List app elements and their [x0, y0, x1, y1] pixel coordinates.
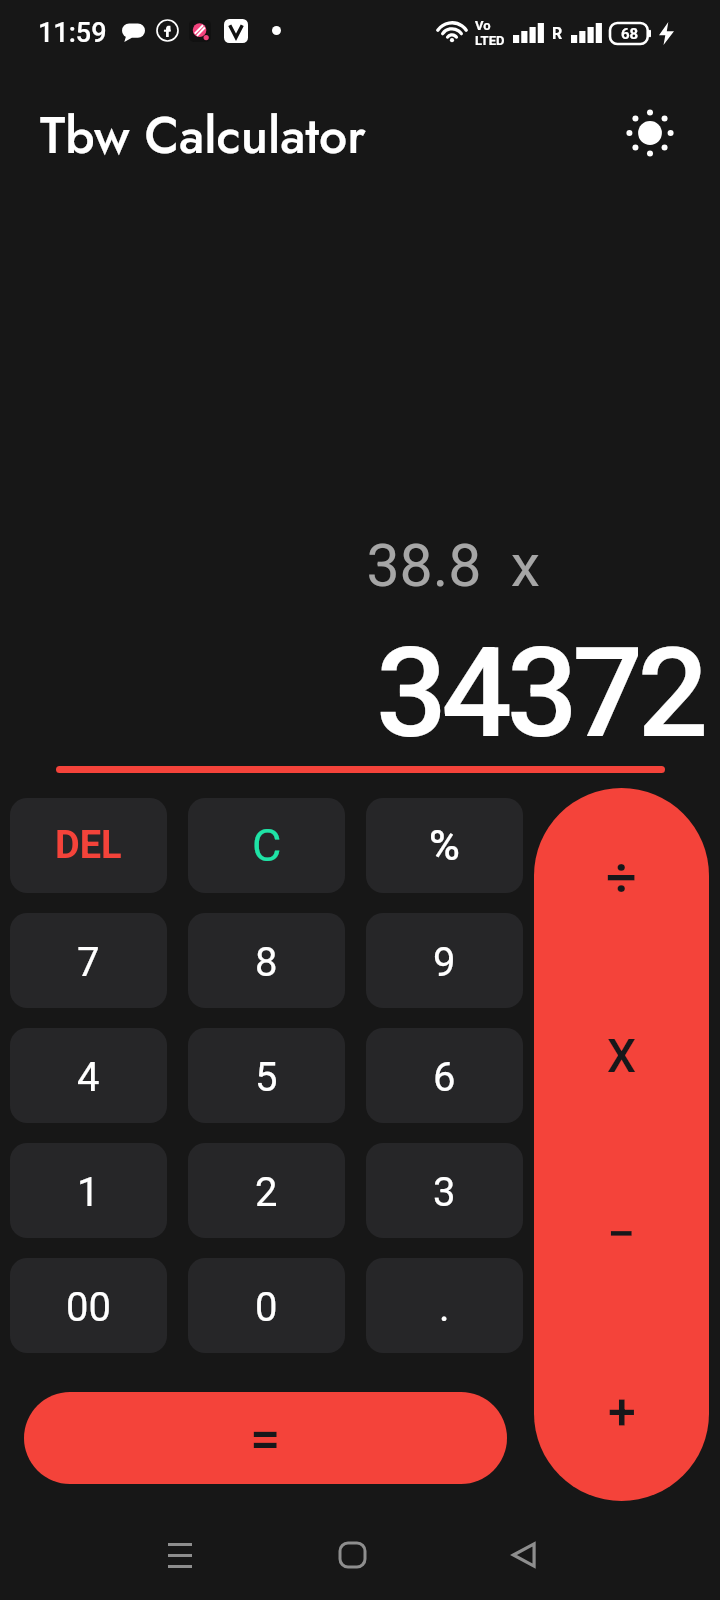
button[interactable]: 2: [188, 1143, 345, 1238]
staticText: 68: [621, 25, 639, 43]
button[interactable]: 8: [188, 913, 345, 1008]
button[interactable]: 1: [10, 1143, 167, 1238]
button[interactable]: 9: [366, 913, 523, 1008]
button[interactable]: +: [534, 1323, 709, 1501]
staticText: ÷: [606, 846, 637, 909]
staticText: +: [608, 1383, 636, 1442]
staticText: R: [552, 24, 563, 43]
staticText: .: [439, 1284, 450, 1331]
button[interactable]: 4: [10, 1028, 167, 1123]
staticText: 2: [255, 1169, 278, 1216]
staticText: 38.8 x: [0, 531, 540, 600]
staticText: Vo: [475, 18, 491, 33]
button[interactable]: =: [24, 1392, 507, 1484]
button[interactable]: Recents: [150, 1525, 210, 1585]
button[interactable]: ÷: [534, 788, 709, 967]
staticText: 9: [433, 939, 456, 986]
staticText: 6: [433, 1054, 456, 1101]
button[interactable]: −: [534, 1145, 709, 1323]
staticText: C: [252, 819, 282, 872]
staticText: 7: [77, 939, 100, 986]
button[interactable]: C: [188, 798, 345, 893]
button[interactable]: 6: [366, 1028, 523, 1123]
staticText: 11:59: [38, 17, 107, 49]
button[interactable]: 5: [188, 1028, 345, 1123]
button[interactable]: Back: [494, 1525, 554, 1585]
staticText: X: [607, 1029, 637, 1083]
button[interactable]: DEL: [10, 798, 167, 893]
button[interactable]: 00: [10, 1258, 167, 1353]
staticText: %: [429, 821, 460, 870]
staticText: 4: [77, 1054, 100, 1101]
button[interactable]: Toggle theme: [619, 102, 681, 164]
staticText: 0: [255, 1284, 278, 1331]
staticText: DEL: [55, 823, 122, 868]
staticText: 00: [66, 1284, 111, 1331]
staticText: 1: [77, 1169, 100, 1216]
button[interactable]: X: [534, 967, 709, 1145]
staticText: =: [250, 1407, 281, 1470]
staticText: 34372: [0, 620, 703, 766]
button[interactable]: .: [366, 1258, 523, 1353]
staticText: 3: [433, 1169, 456, 1216]
staticText: LTED: [475, 33, 505, 48]
staticText: −: [607, 1205, 636, 1264]
button[interactable]: 0: [188, 1258, 345, 1353]
button[interactable]: 3: [366, 1143, 523, 1238]
staticText: Tbw Calculator: [40, 99, 366, 171]
button[interactable]: Home: [322, 1525, 382, 1585]
staticText: 5: [255, 1054, 278, 1101]
staticText: 8: [255, 939, 278, 986]
button[interactable]: %: [366, 798, 523, 893]
button[interactable]: 7: [10, 913, 167, 1008]
